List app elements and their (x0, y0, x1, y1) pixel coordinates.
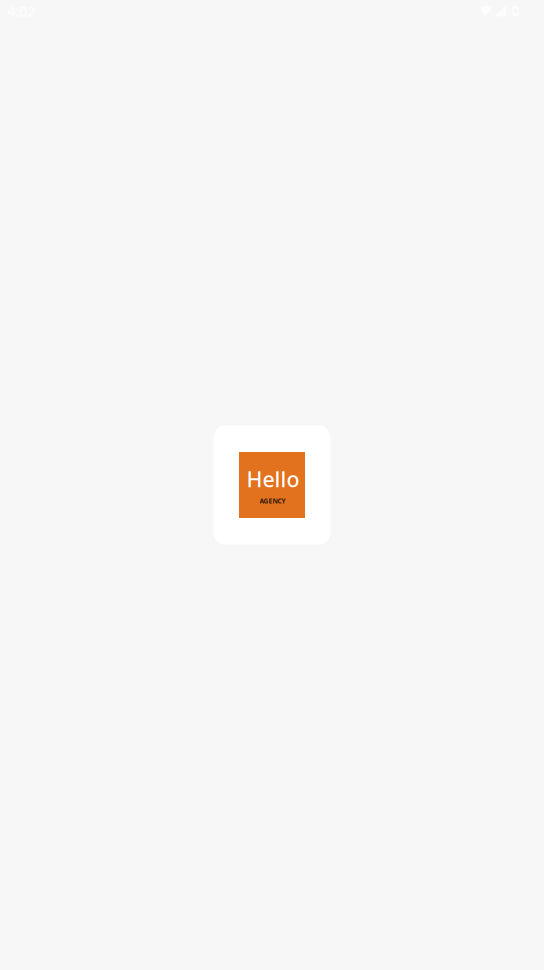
staticText: AGENCY (259, 496, 285, 505)
staticText: Hello (246, 465, 299, 493)
